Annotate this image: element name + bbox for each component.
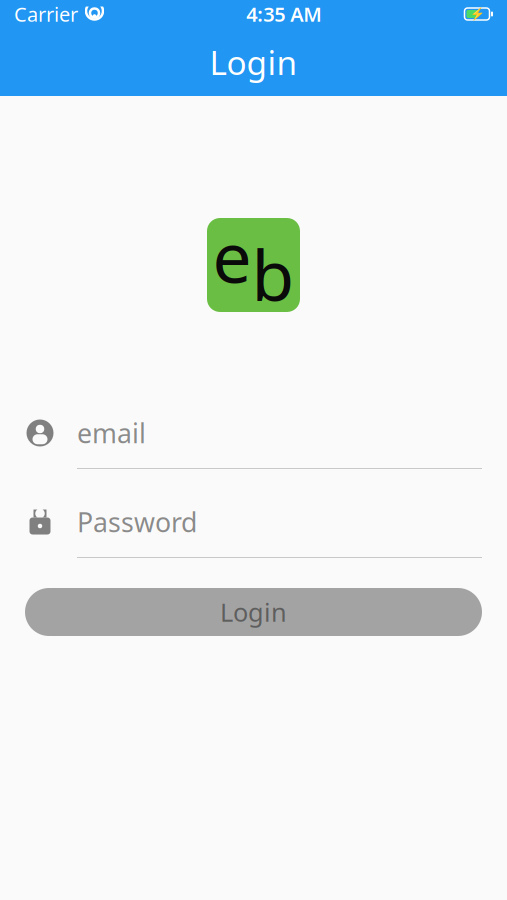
staticText: ⚡	[469, 7, 484, 21]
staticText: 4:35 AM	[246, 1, 322, 27]
staticText: Password	[77, 504, 197, 540]
staticText: email	[77, 415, 146, 451]
staticText: e	[212, 210, 251, 302]
staticText: Login	[209, 40, 297, 84]
staticText: Login	[220, 595, 287, 629]
staticText: b	[251, 228, 294, 320]
staticText: Carrier	[14, 1, 78, 27]
button[interactable]: Login	[25, 588, 482, 636]
